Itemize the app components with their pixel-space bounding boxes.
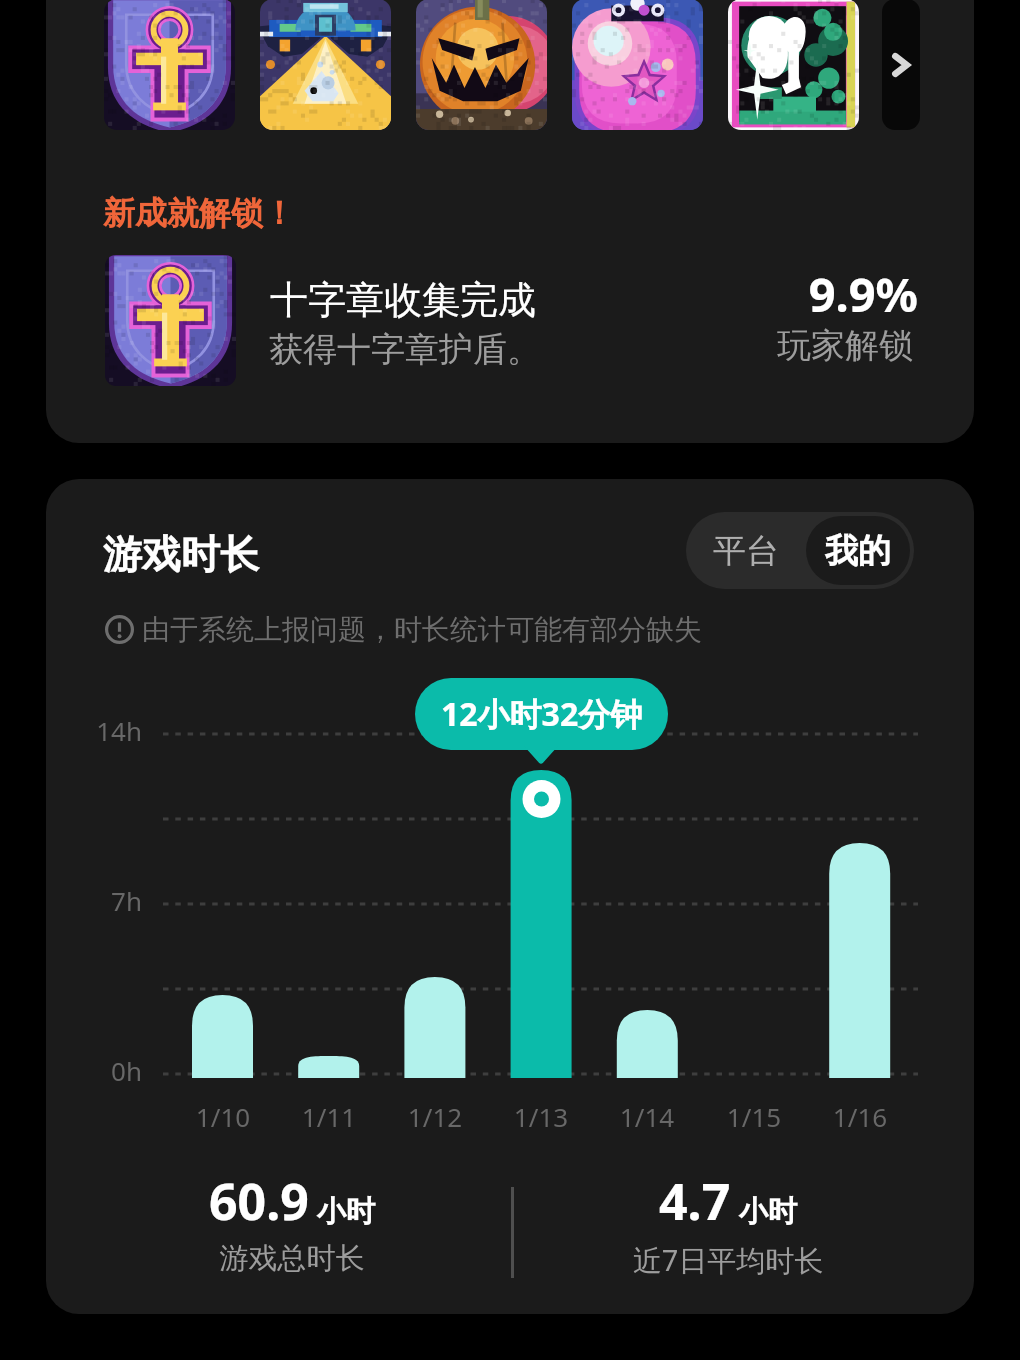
staticText: 1/16 (800, 1099, 920, 1134)
staticText: 4.7 (659, 1167, 731, 1235)
staticText: 7h (46, 883, 142, 918)
button[interactable]: Ghost cave achievement (728, 0, 859, 130)
button[interactable]: UFO abduction achievement (260, 0, 391, 130)
staticText: 由于系统上报问题，时长统计可能有部分缺失 (142, 612, 702, 647)
button[interactable]: Play time on 1/14 (594, 700, 700, 1100)
staticText: 平台 (713, 530, 779, 572)
button[interactable]: 十字章收集完成 (59, 243, 929, 399)
button[interactable]: Play time on 1/13 (488, 700, 594, 1100)
button[interactable]: 平台 (686, 512, 806, 589)
staticText: 1/11 (269, 1099, 389, 1134)
staticText: 1/15 (694, 1099, 814, 1134)
staticText: 新成就解锁！ (103, 193, 295, 233)
staticText: 我的 (825, 530, 891, 572)
button[interactable]: Play time on 1/11 (276, 700, 382, 1100)
button[interactable]: Play time on 1/15 (701, 700, 807, 1100)
staticText: 14h (46, 713, 142, 748)
staticText: 1/10 (163, 1099, 283, 1134)
staticText: 12小时32分钟 (441, 692, 643, 736)
button[interactable]: Play time on 1/10 (170, 700, 276, 1100)
staticText: 0h (46, 1053, 142, 1088)
staticText: 1/13 (481, 1099, 601, 1134)
staticText: 1/14 (587, 1099, 707, 1134)
button[interactable]: Play time on 1/12 (382, 700, 488, 1100)
staticText: 9.9% (600, 262, 918, 326)
staticText: 近7日平均时长 (478, 1240, 974, 1280)
staticText: 十字章收集完成 (270, 276, 536, 324)
staticText: 60.9 (209, 1167, 309, 1235)
button[interactable]: Play time on 1/16 (807, 700, 913, 1100)
button[interactable]: Ankh shield achievement (104, 0, 235, 130)
staticText: 小时 (739, 1193, 797, 1230)
staticText: 1/12 (375, 1099, 495, 1134)
staticText: 游戏时长 (103, 530, 259, 579)
button[interactable]: 我的 (806, 516, 910, 585)
button[interactable]: More achievements (882, 0, 920, 130)
staticText: 玩家解锁 (600, 324, 913, 367)
staticText: 小时 (317, 1193, 375, 1230)
staticText: 游戏总时长 (46, 1240, 542, 1277)
button[interactable]: Slime queen achievement (572, 0, 703, 130)
staticText: 获得十字章护盾。 (269, 328, 541, 371)
button[interactable]: Pumpkin achievement (416, 0, 547, 130)
